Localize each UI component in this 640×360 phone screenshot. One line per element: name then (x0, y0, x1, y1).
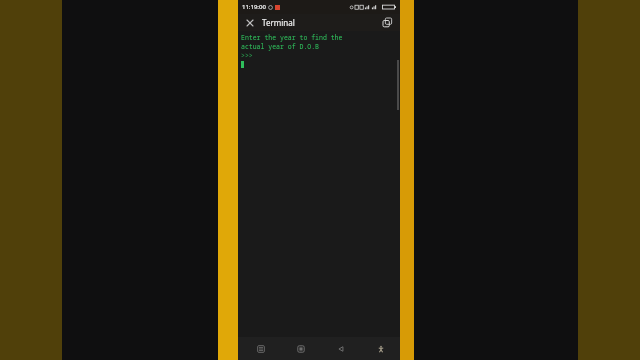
button[interactable]: Close (238, 14, 262, 31)
staticText: >>> (241, 51, 253, 60)
button[interactable]: Back (330, 337, 352, 360)
staticText: Terminal (262, 17, 295, 28)
button[interactable]: Recents (250, 337, 272, 360)
button[interactable]: Tabs (374, 14, 400, 31)
staticText: 11:19:00 (242, 3, 266, 11)
staticText: Enter the year to find the (241, 33, 343, 42)
button[interactable]: Home (290, 337, 312, 360)
button[interactable]: Accessibility (370, 337, 392, 360)
staticText: actual year of D.O.B (241, 42, 320, 51)
